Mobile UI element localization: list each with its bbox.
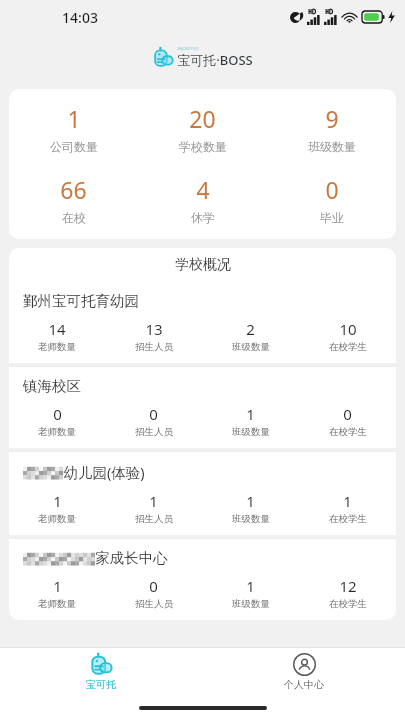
- staticText: 招生人员: [135, 341, 173, 353]
- staticText: 个人中心: [284, 678, 324, 691]
- staticText: 在校学生: [329, 598, 367, 610]
- button[interactable]: 66: [9, 174, 138, 225]
- staticText: 毕业: [320, 210, 344, 225]
- staticText: 老师数量: [38, 426, 76, 438]
- staticText: 鄞州宝可托育幼园: [23, 292, 139, 310]
- button[interactable]: 个人中心: [266, 651, 342, 693]
- staticText: 在校学生: [329, 341, 367, 353]
- staticText: 2: [246, 319, 255, 339]
- staticText: 镇海校区: [23, 377, 81, 395]
- staticText: 0: [149, 576, 158, 596]
- staticText: 0: [53, 404, 62, 424]
- staticText: 1: [246, 576, 255, 596]
- other: 个人中心: [293, 653, 316, 676]
- staticText: 4: [196, 174, 210, 205]
- staticText: 招生人员: [135, 426, 173, 438]
- button[interactable]: 20: [138, 103, 267, 154]
- staticText: 老师数量: [38, 598, 76, 610]
- staticText: 休学: [191, 210, 215, 225]
- staticText: 0: [149, 404, 158, 424]
- staticText: 班级数量: [232, 513, 270, 525]
- staticText: 宝可托·BOSS: [177, 51, 253, 69]
- staticText: 1: [149, 491, 158, 511]
- staticText: 20: [189, 103, 216, 134]
- staticText: 66: [60, 174, 87, 205]
- staticText: 14: [48, 319, 66, 339]
- button[interactable]: 4: [138, 174, 267, 225]
- staticText: 在校学生: [329, 426, 367, 438]
- staticText: 幼儿园(体验): [63, 462, 145, 482]
- staticText: 家成长中心: [95, 549, 168, 567]
- staticText: 学校数量: [179, 139, 227, 154]
- staticText: 1: [67, 103, 81, 134]
- staticText: 招生人员: [135, 513, 173, 525]
- staticText: 1: [343, 491, 352, 511]
- staticText: 班级数量: [232, 426, 270, 438]
- staticText: 老师数量: [38, 513, 76, 525]
- button[interactable]: 幼儿园(体验): [9, 451, 396, 535]
- staticText: 13: [145, 319, 163, 339]
- button[interactable]: 1: [9, 103, 138, 154]
- staticText: 班级数量: [232, 341, 270, 353]
- staticText: 0: [325, 174, 339, 205]
- staticText: 12: [339, 576, 357, 596]
- staticText: 老师数量: [38, 341, 76, 353]
- staticText: 在校学生: [329, 513, 367, 525]
- button[interactable]: 宝可托: [68, 651, 134, 693]
- staticText: 班级数量: [308, 139, 356, 154]
- button[interactable]: 镇海校区: [9, 366, 396, 448]
- staticText: 班级数量: [232, 598, 270, 610]
- staticText: 9: [325, 103, 339, 134]
- button[interactable]: 家成长中心: [9, 538, 396, 620]
- staticText: 0: [343, 404, 352, 424]
- staticText: 公司数量: [50, 139, 98, 154]
- staticText: 1: [53, 576, 62, 596]
- staticText: 1: [246, 491, 255, 511]
- staticText: 1: [53, 491, 62, 511]
- staticText: 招生人员: [135, 598, 173, 610]
- staticText: 10: [339, 319, 357, 339]
- button[interactable]: 0: [267, 174, 396, 225]
- staticText: 1: [246, 404, 255, 424]
- staticText: 宝可托: [86, 678, 116, 691]
- staticText: BAOKETUO: [177, 46, 199, 51]
- staticText: 14:03: [62, 8, 98, 27]
- staticText: 学校概况: [175, 256, 231, 274]
- button[interactable]: 9: [267, 103, 396, 154]
- staticText: 在校: [62, 210, 86, 225]
- button[interactable]: 鄞州宝可托育幼园: [9, 282, 396, 363]
